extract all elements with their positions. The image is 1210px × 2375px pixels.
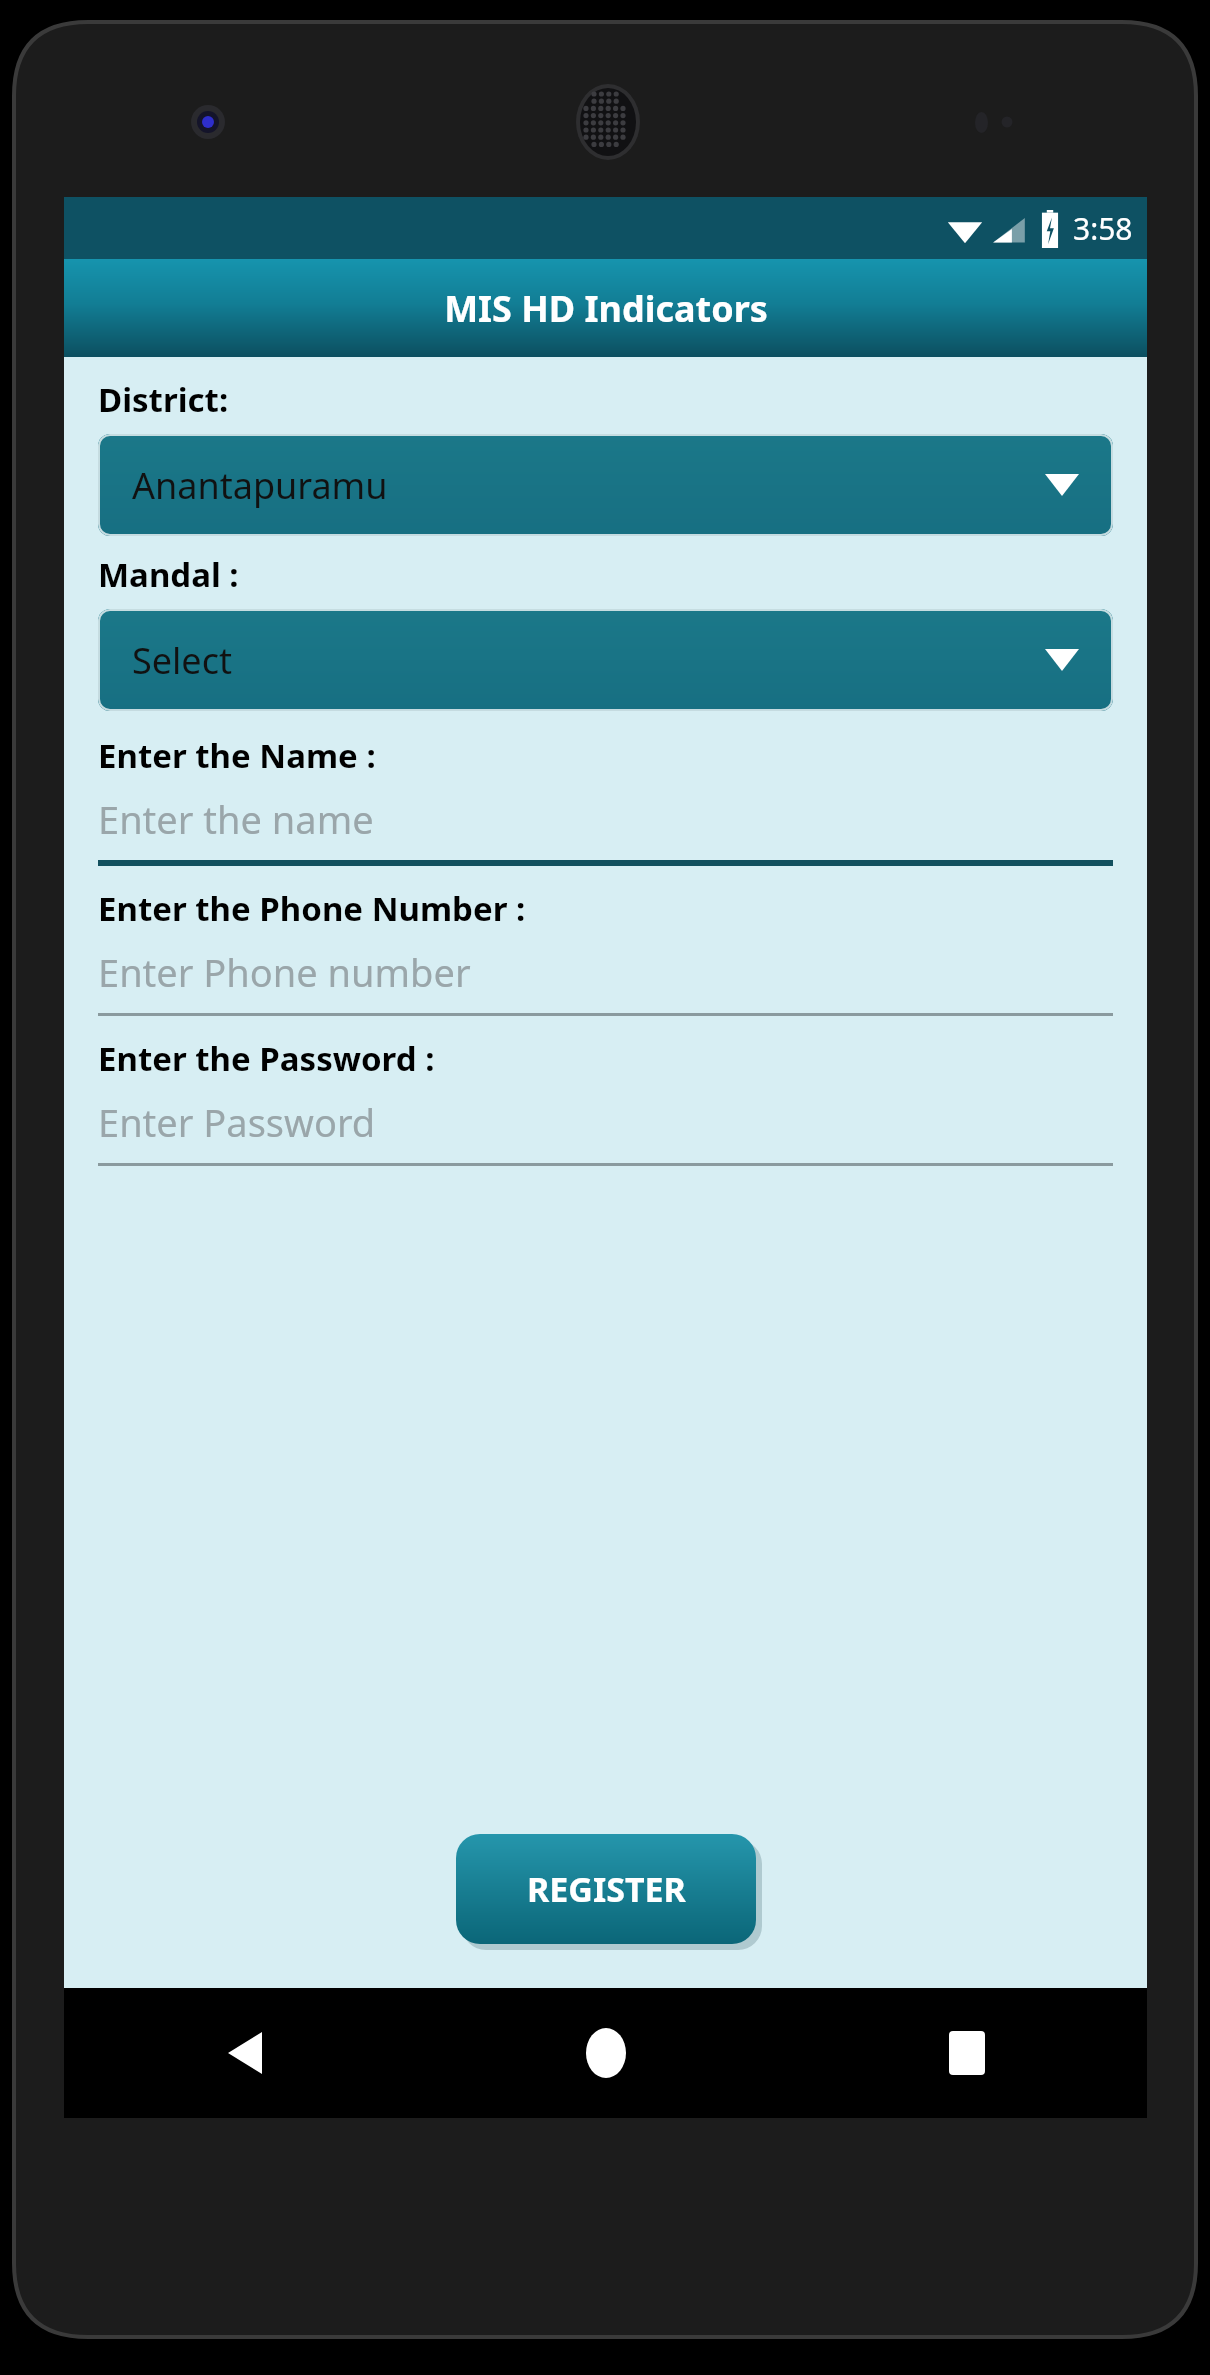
staticText: 3:58 bbox=[1073, 208, 1133, 249]
button[interactable]: Enter Phone number bbox=[98, 931, 1113, 1016]
button[interactable]: Home bbox=[425, 1988, 786, 2118]
button[interactable]: Recents bbox=[786, 1988, 1147, 2118]
button[interactable]: Back bbox=[64, 1988, 425, 2118]
staticText: Anantapuramu bbox=[132, 461, 388, 510]
button[interactable]: Anantapuramu bbox=[98, 434, 1113, 536]
staticText: Enter the name bbox=[98, 793, 374, 845]
staticText: MIS HD Indicators bbox=[444, 284, 768, 333]
staticText: REGISTER bbox=[527, 1866, 686, 1912]
staticText: Enter Password bbox=[98, 1096, 376, 1148]
button[interactable]: Enter the name bbox=[98, 778, 1113, 866]
staticText: Mandal : bbox=[98, 552, 239, 597]
staticText: Select bbox=[132, 636, 232, 685]
button[interactable]: Select bbox=[98, 609, 1113, 711]
staticText: Enter Phone number bbox=[98, 946, 471, 998]
button[interactable]: Enter Password bbox=[98, 1081, 1113, 1166]
staticText: Enter the Name : bbox=[98, 733, 376, 778]
button[interactable]: REGISTER bbox=[456, 1834, 756, 1944]
staticText: Enter the Phone Number : bbox=[98, 886, 526, 931]
staticText: District: bbox=[98, 377, 229, 422]
staticText: Enter the Password : bbox=[98, 1036, 435, 1081]
